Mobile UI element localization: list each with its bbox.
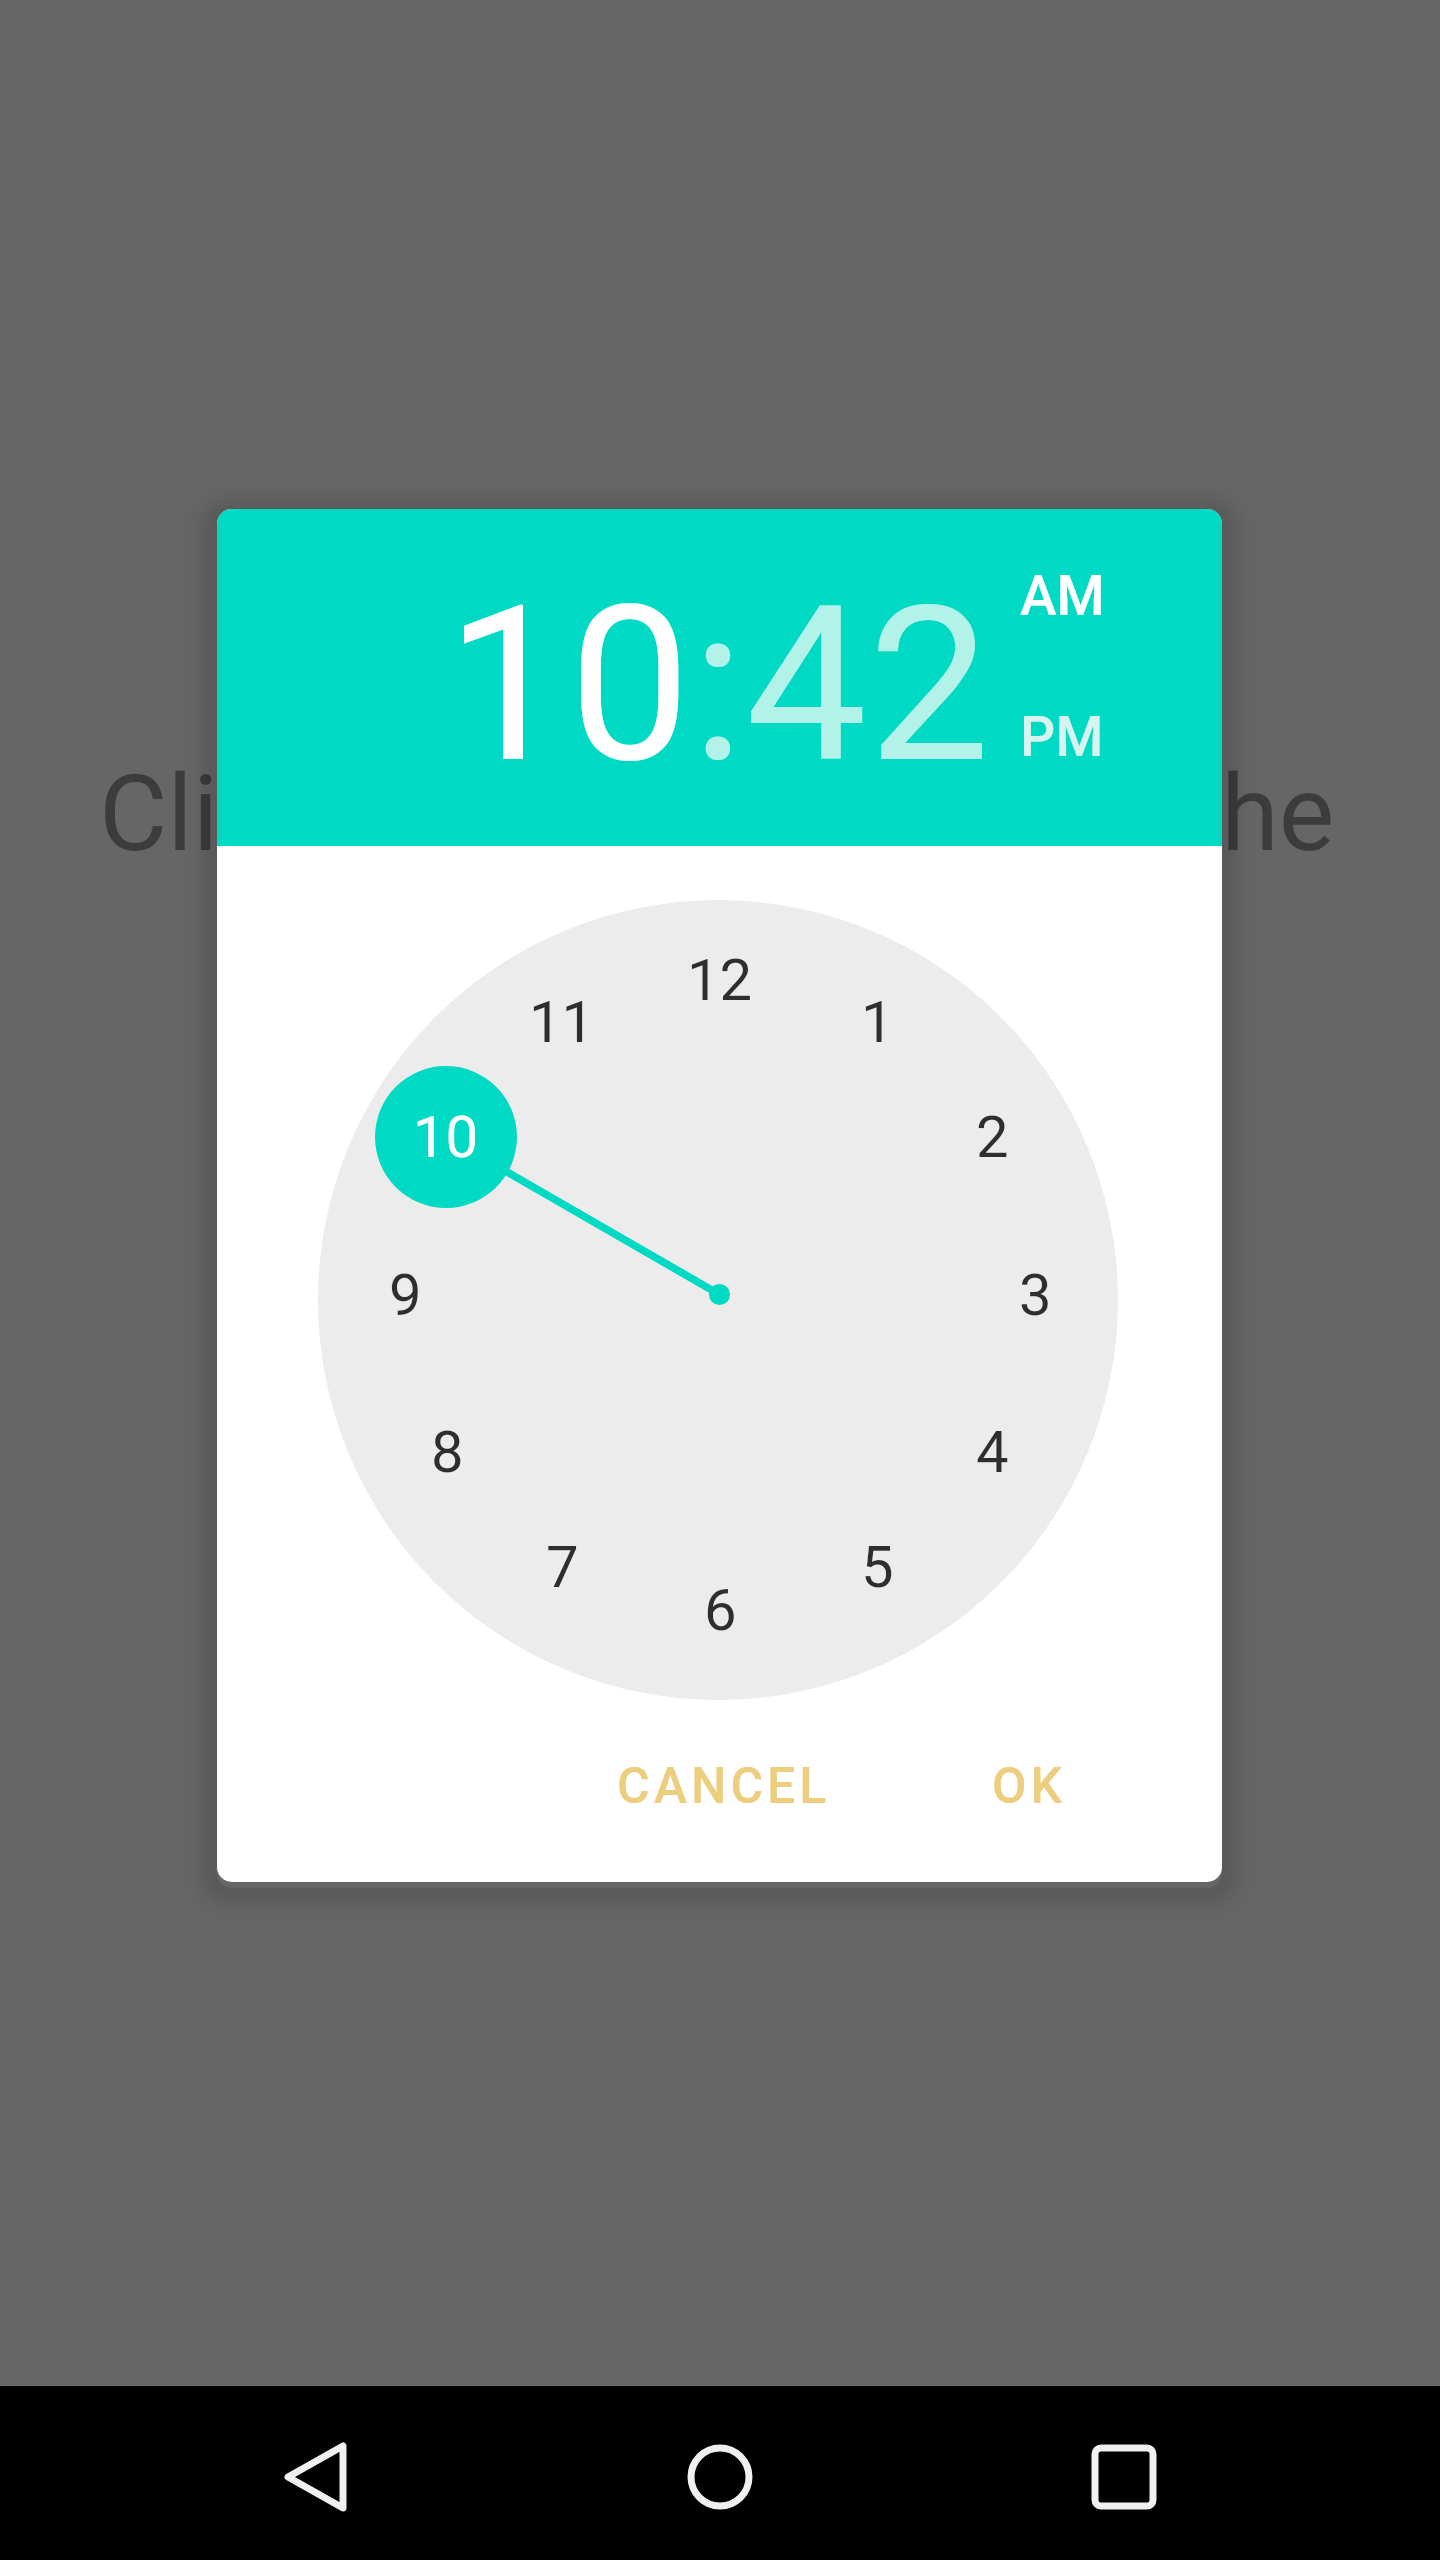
- button[interactable]: 2: [932, 1077, 1052, 1197]
- staticText: 4: [976, 1418, 1009, 1486]
- staticText: 11: [529, 988, 595, 1056]
- button[interactable]: [260, 2421, 372, 2533]
- button[interactable]: 6: [660, 1550, 780, 1670]
- staticText: 10: [413, 1103, 479, 1171]
- button[interactable]: [664, 2421, 776, 2533]
- staticText: 12: [687, 946, 753, 1014]
- button[interactable]: 11: [502, 962, 622, 1082]
- staticText: 5: [861, 1533, 894, 1601]
- staticText: OK: [992, 1757, 1067, 1816]
- button[interactable]: 1: [817, 962, 937, 1082]
- staticText: CANCEL: [617, 1757, 831, 1816]
- button[interactable]: 12: [660, 920, 780, 1040]
- staticText: 1: [861, 988, 894, 1056]
- staticText: 9: [389, 1261, 422, 1329]
- staticText: he: [1221, 753, 1335, 876]
- button[interactable]: 10: [375, 1066, 517, 1208]
- staticText: 3: [1019, 1261, 1052, 1329]
- button[interactable]: 8: [387, 1392, 507, 1512]
- button[interactable]: 9: [345, 1235, 465, 1355]
- button[interactable]: 7: [502, 1507, 622, 1627]
- button[interactable]: 5: [817, 1507, 937, 1627]
- button[interactable]: PM: [1020, 705, 1104, 769]
- button[interactable]: 10:42: [446, 559, 992, 812]
- button[interactable]: 3: [975, 1235, 1095, 1355]
- staticText: 6: [704, 1576, 737, 1644]
- staticText: Cli: [99, 753, 219, 876]
- button[interactable]: AM: [1020, 564, 1105, 628]
- button[interactable]: CANCEL: [596, 1730, 852, 1842]
- button[interactable]: 4: [932, 1392, 1052, 1512]
- button[interactable]: OK: [954, 1730, 1104, 1842]
- button[interactable]: [1068, 2421, 1180, 2533]
- staticText: 7: [546, 1533, 579, 1601]
- staticText: 8: [431, 1418, 464, 1486]
- staticText: 2: [976, 1103, 1009, 1171]
